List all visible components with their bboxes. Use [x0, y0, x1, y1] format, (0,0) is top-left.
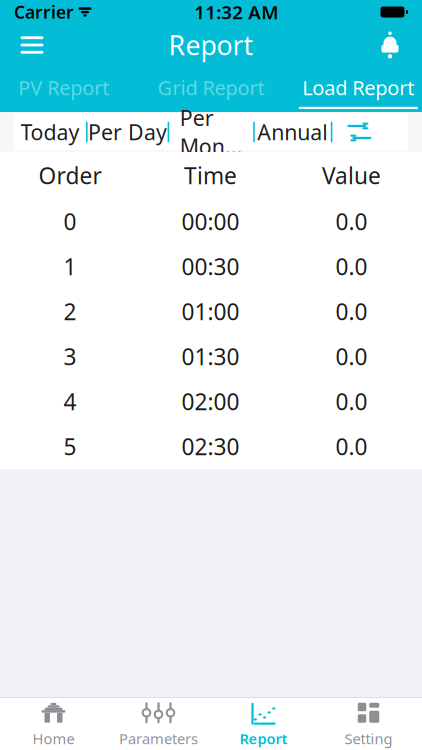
staticText: 0.0 [335, 431, 367, 461]
staticText: 4 [63, 386, 76, 416]
staticText: 01:30 [181, 341, 239, 371]
button[interactable]: PV Report [0, 69, 127, 109]
button[interactable]: Setting [316, 698, 421, 750]
staticText: 5 [63, 431, 76, 461]
staticText: Value [322, 160, 381, 190]
staticText: 02:00 [181, 386, 239, 416]
button[interactable]: Per Mon... [169, 114, 253, 150]
staticText: Per Mon... [180, 104, 243, 160]
staticText: 0.0 [335, 341, 367, 371]
staticText: 0.0 [335, 251, 367, 281]
staticText: 01:00 [181, 296, 239, 326]
staticText: 11:32 AM [194, 0, 278, 24]
staticText: 00:30 [181, 251, 239, 281]
button[interactable]: Swap rows and columns [332, 114, 386, 150]
staticText: Today [20, 118, 79, 146]
button[interactable]: Parameters [106, 698, 211, 750]
button[interactable]: Grid Report [147, 69, 275, 109]
staticText: Setting [344, 729, 392, 748]
staticText: 0 [63, 206, 76, 236]
staticText: PV Report [18, 74, 109, 101]
button[interactable]: Notifications [366, 23, 414, 67]
staticText: Carrier [14, 0, 74, 23]
staticText: 0.0 [335, 206, 367, 236]
staticText: Report [168, 27, 253, 63]
staticText: 0.0 [335, 296, 367, 326]
staticText: Time [184, 160, 237, 190]
staticText: Annual [257, 118, 328, 146]
staticText: Grid Report [157, 74, 264, 101]
staticText: 0.0 [335, 386, 367, 416]
staticText: Report [239, 729, 287, 748]
staticText: 2 [63, 296, 76, 326]
button[interactable]: Annual [255, 114, 331, 150]
staticText: Per Day [88, 118, 167, 146]
staticText: Order [38, 160, 101, 190]
staticText: 3 [63, 341, 76, 371]
staticText: Home [32, 729, 74, 748]
staticText: 1 [63, 251, 76, 281]
staticText: 02:30 [181, 431, 239, 461]
button[interactable]: Per Day [88, 114, 168, 150]
button[interactable]: Home [1, 698, 106, 750]
button[interactable]: Menu [8, 23, 56, 67]
staticText: 00:00 [181, 206, 239, 236]
button[interactable]: Report [211, 698, 316, 750]
staticText: Parameters [119, 729, 198, 748]
button[interactable]: Today [14, 114, 86, 150]
staticText: Load Report [302, 74, 414, 101]
button[interactable]: Load Report [295, 69, 422, 109]
